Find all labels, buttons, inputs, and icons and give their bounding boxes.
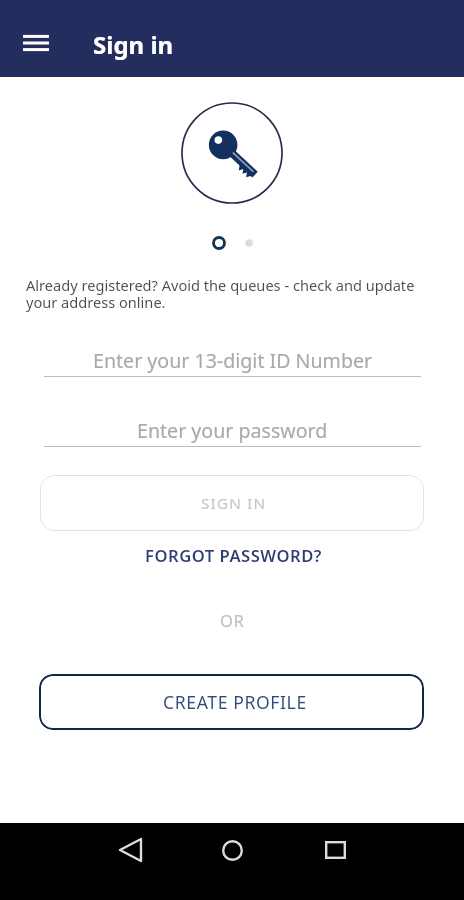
staticText: Enter your password bbox=[137, 417, 328, 444]
button[interactable]: Back bbox=[106, 826, 154, 874]
button[interactable]: CREATE PROFILE bbox=[39, 674, 424, 730]
button[interactable]: Home bbox=[208, 826, 256, 874]
staticText: Enter your 13-digit ID Number bbox=[93, 347, 373, 374]
staticText: FORGOT PASSWORD? bbox=[145, 544, 322, 567]
staticText: CREATE PROFILE bbox=[163, 690, 307, 714]
button[interactable]: Enter your password bbox=[44, 415, 421, 447]
staticText: Already registered? Avoid the queues - c… bbox=[26, 275, 426, 312]
button[interactable]: Menu bbox=[14, 21, 58, 65]
button[interactable]: FORGOT PASSWORD? bbox=[145, 544, 322, 567]
button[interactable]: SIGN IN bbox=[40, 475, 424, 531]
staticText: SIGN IN bbox=[201, 493, 267, 514]
staticText: Sign in bbox=[93, 28, 174, 61]
button[interactable]: Enter your 13-digit ID Number bbox=[44, 345, 421, 377]
button[interactable]: Recents bbox=[311, 826, 359, 874]
staticText: OR bbox=[220, 609, 245, 631]
